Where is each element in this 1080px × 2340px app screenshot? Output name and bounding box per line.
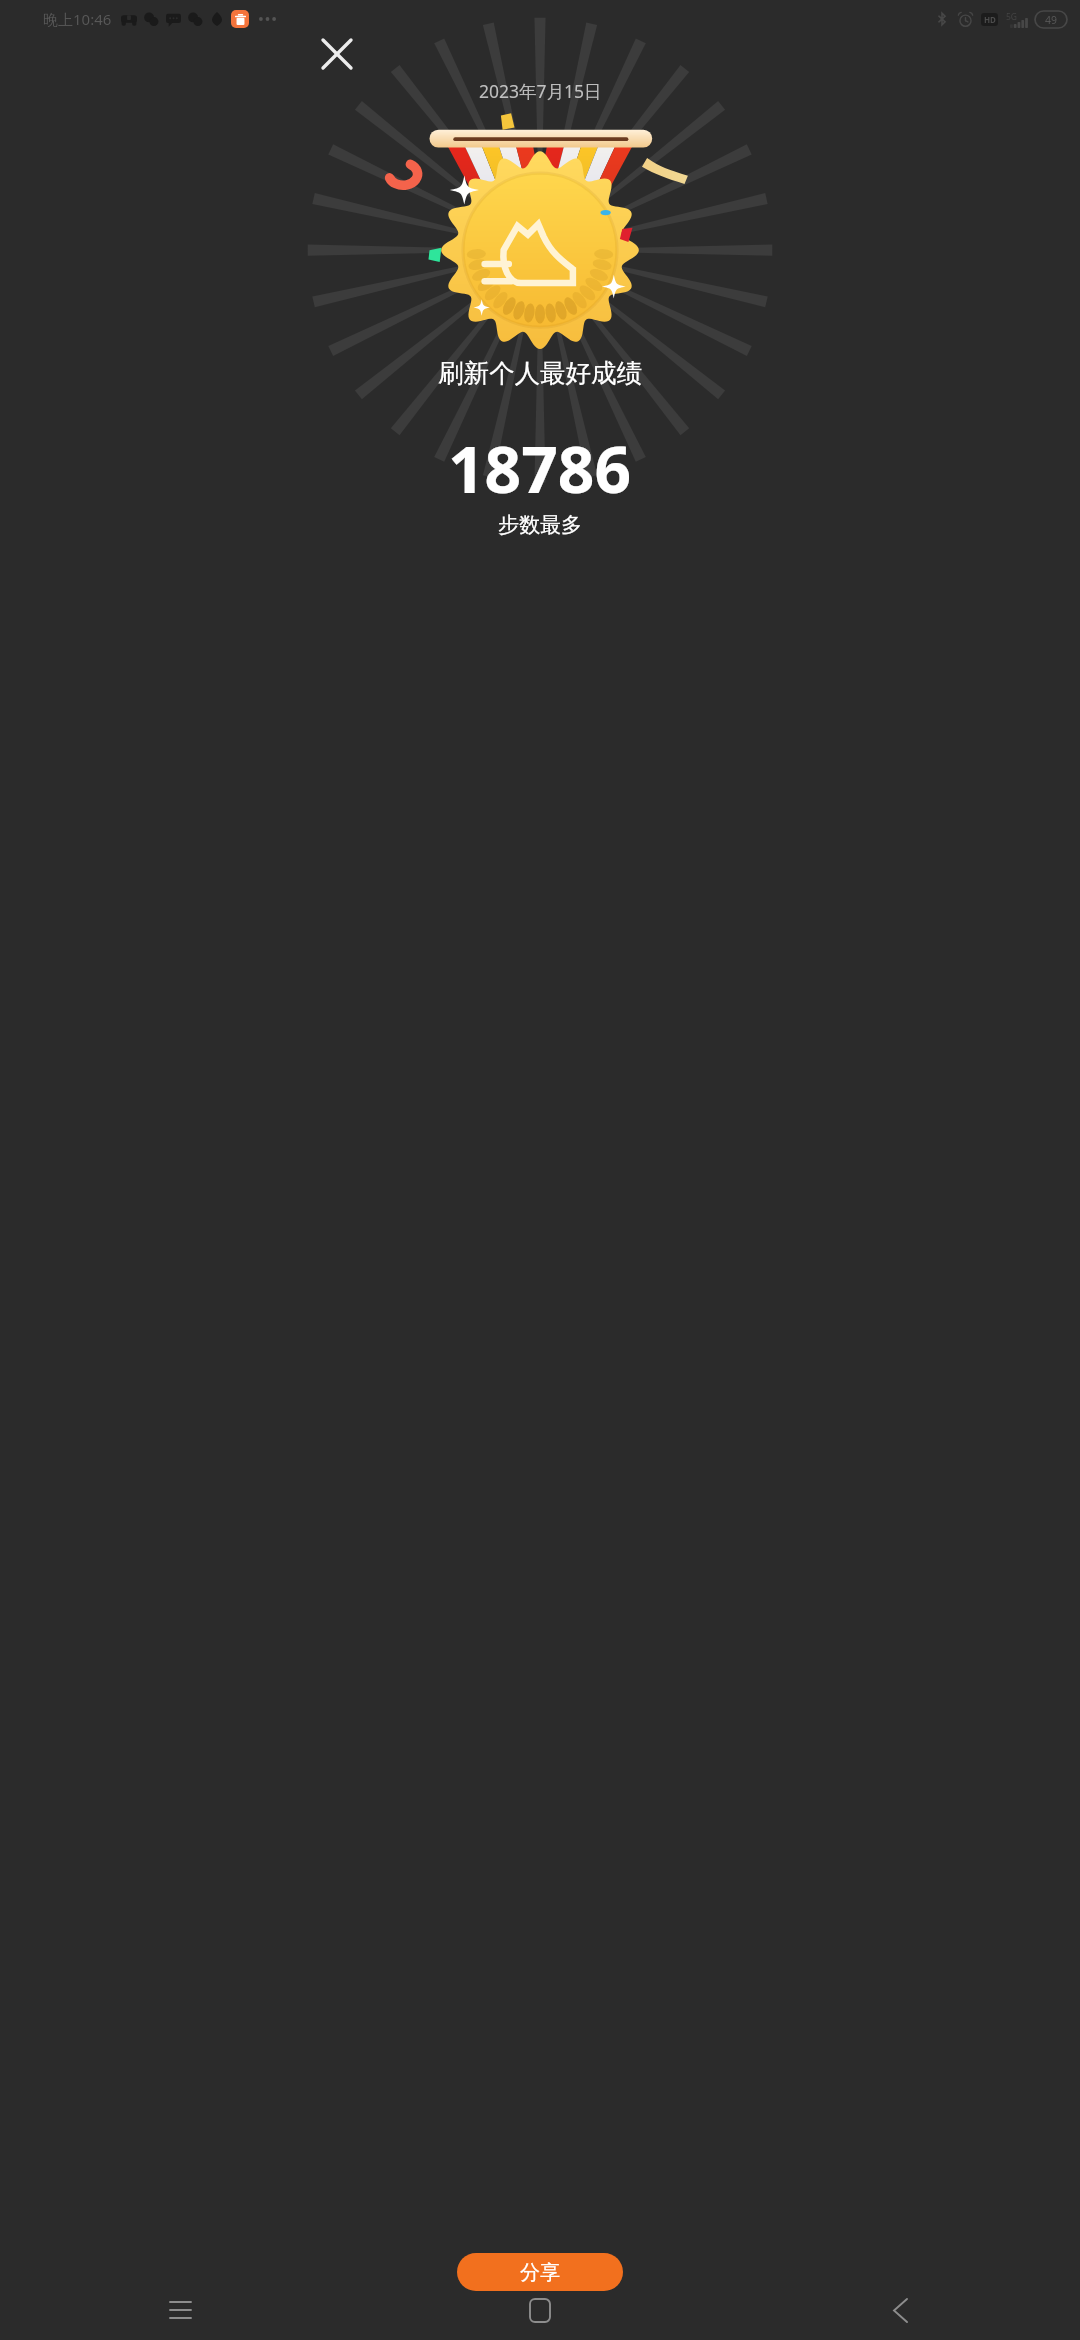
button[interactable]: Recents (0, 2280, 360, 2340)
staticText: 18786 (448, 425, 632, 512)
staticText: 刷新个人最好成绩 (438, 357, 642, 389)
button[interactable]: Close (313, 30, 361, 78)
staticText: 晚上10:46 (43, 9, 112, 29)
staticText: 5G (1006, 11, 1018, 23)
staticText: 49 (1045, 13, 1058, 27)
staticText: HD (984, 14, 996, 25)
button[interactable]: Home (360, 2280, 720, 2340)
staticText: 分享 (520, 2260, 560, 2285)
button[interactable]: 分享 (457, 2253, 623, 2291)
staticText: 2023年7月15日 (479, 79, 602, 103)
staticText: 步数最多 (498, 512, 582, 538)
button[interactable]: Back (720, 2280, 1080, 2340)
